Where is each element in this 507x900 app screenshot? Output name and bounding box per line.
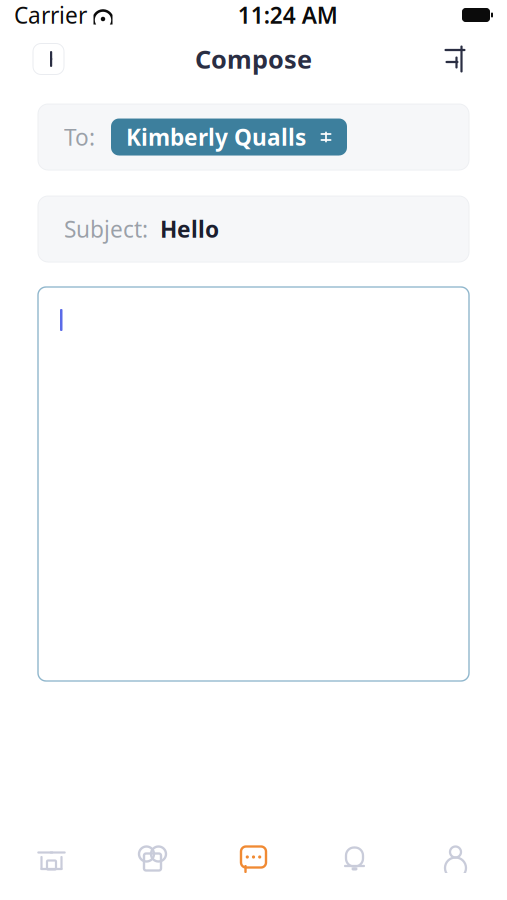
button[interactable]: Subject: — [38, 196, 469, 262]
button[interactable]: Notifications — [304, 818, 405, 900]
staticText: Subject: — [64, 214, 148, 244]
button[interactable]: Likes — [102, 818, 203, 900]
button[interactable]: Home — [1, 818, 102, 900]
button[interactable] — [38, 287, 469, 681]
staticText: Hello — [160, 214, 219, 244]
staticText: Kimberly Qualls — [126, 122, 306, 152]
button[interactable]: Messages — [203, 818, 304, 900]
staticText: 11:24 AM — [238, 0, 338, 30]
staticText: Carrier — [14, 0, 87, 30]
staticText: To: — [64, 122, 95, 152]
button[interactable]: Back — [33, 43, 64, 74]
staticText: Compose — [195, 42, 312, 76]
button[interactable]: Kimberly Qualls — [111, 118, 347, 155]
button[interactable]: Profile — [405, 818, 506, 900]
button[interactable]: Send — [440, 42, 474, 76]
